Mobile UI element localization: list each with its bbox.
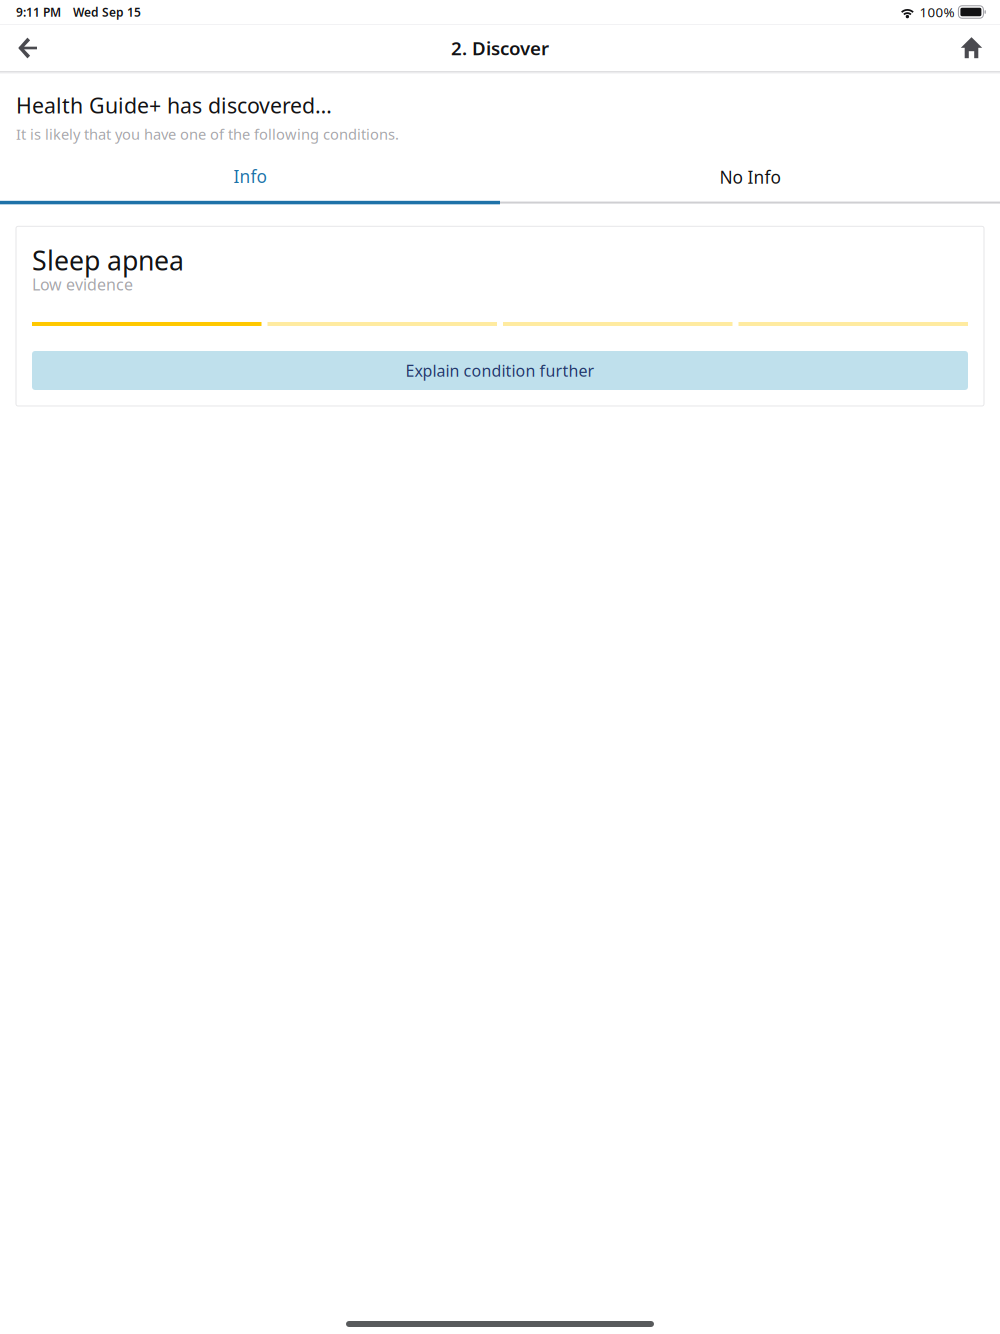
staticText: It is likely that you have one of the fo… [16, 124, 399, 144]
button[interactable]: No Info [500, 145, 1000, 204]
staticText: Health Guide+ has discovered… [16, 91, 332, 119]
button[interactable]: Home [944, 25, 1000, 71]
button[interactable]: Info [0, 144, 500, 204]
button[interactable]: Explain condition further [32, 351, 968, 390]
staticText: 100% [919, 3, 954, 21]
staticText: Low evidence [32, 274, 133, 295]
staticText: No Info [719, 166, 780, 189]
staticText: 2. Discover [451, 36, 549, 60]
staticText: Wed Sep 15 [73, 4, 141, 20]
staticText: 9:11 PM [16, 4, 61, 20]
button[interactable]: Back [0, 25, 56, 71]
staticText: Explain condition further [405, 360, 594, 381]
staticText: Sleep apnea [32, 242, 184, 278]
staticText: Info [233, 165, 266, 188]
